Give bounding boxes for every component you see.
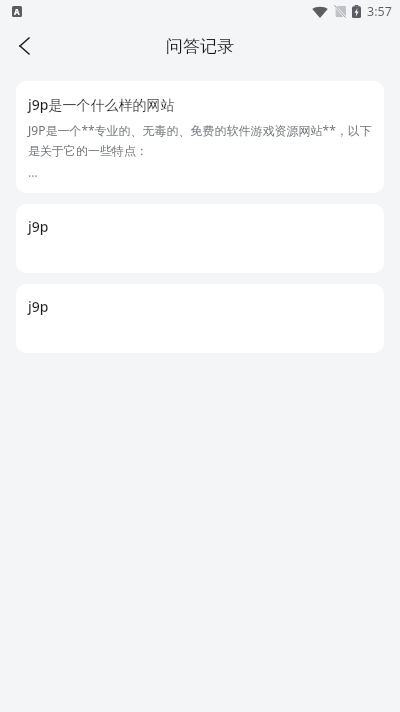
staticText: 问答记录 [166, 36, 234, 57]
staticText: ... [28, 164, 38, 180]
staticText: 3:57 [367, 3, 392, 20]
staticText: j9p [28, 297, 49, 316]
button[interactable]: j9p是一个什么样的网站 [16, 81, 384, 193]
button[interactable]: j9p [16, 204, 384, 273]
button[interactable]: j9p [16, 284, 384, 353]
staticText: j9p [28, 217, 49, 236]
staticText: A [14, 6, 20, 17]
staticText: J9P是一个**专业的、无毒的、免费的软件游戏资源网站**，以下是关于它的一些特… [28, 122, 372, 158]
button[interactable]: Back [0, 22, 48, 70]
staticText: j9p是一个什么样的网站 [28, 95, 175, 114]
